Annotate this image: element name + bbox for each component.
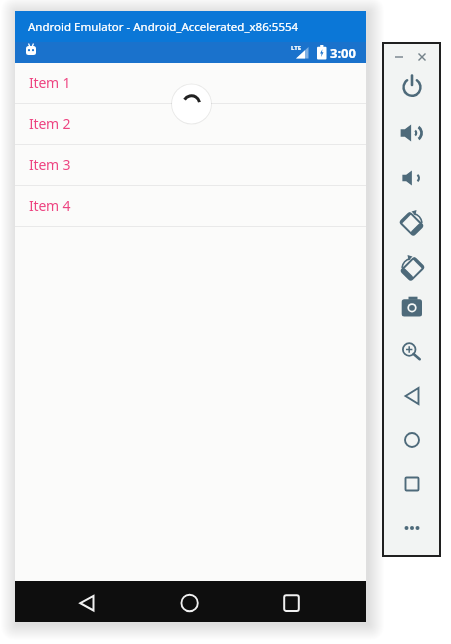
staticText: Item 4 bbox=[29, 196, 71, 215]
button[interactable]: Item 3 bbox=[15, 145, 366, 186]
button[interactable] bbox=[394, 249, 430, 285]
button[interactable]: Item 1 bbox=[15, 63, 366, 104]
button[interactable] bbox=[394, 290, 430, 326]
button[interactable] bbox=[170, 581, 210, 622]
button[interactable] bbox=[394, 510, 430, 546]
button[interactable] bbox=[394, 115, 430, 151]
button[interactable] bbox=[394, 334, 430, 370]
button[interactable]: Item 2 bbox=[15, 104, 366, 145]
button[interactable]: Item 4 bbox=[15, 186, 366, 227]
staticText: Item 3 bbox=[29, 155, 71, 174]
button[interactable] bbox=[394, 422, 430, 458]
button[interactable] bbox=[394, 68, 430, 104]
button[interactable] bbox=[394, 378, 430, 414]
button[interactable] bbox=[394, 160, 430, 196]
staticText: 3:00 bbox=[330, 44, 356, 62]
button[interactable] bbox=[414, 49, 430, 65]
button[interactable] bbox=[394, 466, 430, 502]
button[interactable] bbox=[394, 204, 430, 240]
button[interactable] bbox=[68, 581, 108, 622]
button[interactable] bbox=[391, 49, 407, 65]
button[interactable]: Android Emulator - Android_Accelerated_x… bbox=[15, 11, 366, 42]
button[interactable] bbox=[273, 581, 313, 622]
staticText: Item 1 bbox=[29, 73, 71, 92]
staticText: Android Emulator - Android_Accelerated_x… bbox=[28, 19, 299, 35]
staticText: LTE bbox=[291, 44, 302, 52]
staticText: Item 2 bbox=[29, 114, 71, 133]
